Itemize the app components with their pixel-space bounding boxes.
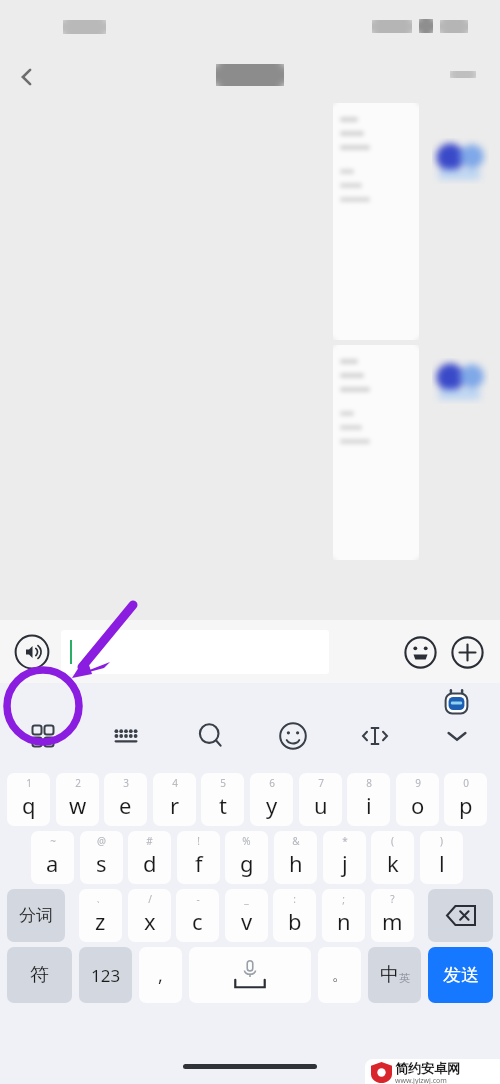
staticText: @ xyxy=(97,834,106,848)
button[interactable]: 符 xyxy=(7,947,72,1003)
button[interactable]: 1 xyxy=(7,773,50,826)
staticText: www.jylzwj.com xyxy=(395,1076,447,1084)
staticText: i xyxy=(366,790,372,820)
button[interactable]: More xyxy=(446,631,488,673)
staticText: e xyxy=(119,790,132,820)
staticText: 8 xyxy=(366,776,372,790)
staticText: - xyxy=(196,892,200,906)
staticText: n xyxy=(337,906,351,936)
button[interactable]: Stickers xyxy=(270,713,316,759)
staticText: * xyxy=(342,834,348,848)
staticText: : xyxy=(293,892,296,906)
staticText: 分词 xyxy=(19,905,53,926)
button[interactable]: # xyxy=(128,831,171,884)
staticText: y xyxy=(266,790,278,820)
button[interactable]: Emoji xyxy=(399,631,441,673)
button[interactable]: : xyxy=(273,889,316,942)
staticText: 英 xyxy=(399,971,410,985)
button[interactable]: Hide keyboard xyxy=(434,713,480,759)
staticText: z xyxy=(95,906,106,936)
staticText: 简约安卓网 xyxy=(395,1060,460,1076)
staticText: j xyxy=(342,848,348,878)
staticText: , xyxy=(158,963,163,988)
staticText: 6 xyxy=(269,776,275,790)
button[interactable]: 0 xyxy=(444,773,487,826)
button[interactable]: Space xyxy=(189,947,311,1003)
staticText: 发送 xyxy=(443,964,479,987)
staticText: ) xyxy=(440,834,443,848)
button[interactable]: _ xyxy=(225,889,268,942)
staticText: ! xyxy=(197,834,200,848)
staticText: ? xyxy=(390,892,395,906)
staticText: t xyxy=(219,790,227,820)
staticText: f xyxy=(195,848,203,878)
button[interactable]: 、 xyxy=(79,889,122,942)
staticText: ~ xyxy=(50,834,56,848)
staticText: 7 xyxy=(318,776,324,790)
button[interactable]: 6 xyxy=(250,773,293,826)
button[interactable]: ( xyxy=(371,831,414,884)
staticText: x xyxy=(144,906,156,936)
button[interactable]: % xyxy=(225,831,268,884)
button[interactable]: 8 xyxy=(347,773,390,826)
button[interactable]: - xyxy=(176,889,219,942)
button[interactable]: 2 xyxy=(56,773,99,826)
staticText: 4 xyxy=(172,776,178,790)
button[interactable]: 发送 xyxy=(428,947,493,1003)
button[interactable]: Keyboard layout xyxy=(103,713,149,759)
staticText: _ xyxy=(244,892,249,906)
button[interactable]: Text cursor xyxy=(352,713,398,759)
staticText: m xyxy=(382,906,403,936)
button[interactable]: 。 xyxy=(318,947,361,1003)
staticText: ; xyxy=(342,892,345,906)
staticText: d xyxy=(143,848,157,878)
staticText: 123 xyxy=(91,964,121,987)
button[interactable]: / xyxy=(128,889,171,942)
button[interactable]: AI assistant xyxy=(440,687,473,720)
button[interactable]: ; xyxy=(322,889,365,942)
staticText: % xyxy=(242,834,251,848)
staticText: g xyxy=(240,848,254,878)
staticText: l xyxy=(439,848,445,878)
button[interactable]: 5 xyxy=(201,773,244,826)
staticText: 符 xyxy=(30,963,49,987)
button[interactable]: & xyxy=(274,831,317,884)
staticText: 9 xyxy=(415,776,421,790)
button[interactable]: ? xyxy=(371,889,414,942)
staticText: c xyxy=(192,906,203,936)
button[interactable]: Search xyxy=(188,713,234,759)
button[interactable]: Backspace xyxy=(428,889,493,942)
button[interactable]: Voice input xyxy=(13,633,51,671)
button[interactable]: 分词 xyxy=(7,889,65,942)
button[interactable]: 中 xyxy=(368,947,421,1003)
button[interactable]: 4 xyxy=(153,773,196,826)
button[interactable] xyxy=(61,630,329,674)
staticText: u xyxy=(314,790,328,820)
button[interactable]: 7 xyxy=(299,773,342,826)
staticText: a xyxy=(46,848,59,878)
staticText: / xyxy=(148,892,152,906)
staticText: v xyxy=(241,906,253,936)
staticText: # xyxy=(146,834,153,848)
button[interactable]: * xyxy=(323,831,366,884)
staticText: 中 xyxy=(380,963,399,987)
staticText: b xyxy=(288,906,302,936)
button[interactable]: 3 xyxy=(104,773,147,826)
staticText: h xyxy=(289,848,303,878)
button[interactable]: 9 xyxy=(396,773,439,826)
staticText: r xyxy=(170,790,180,820)
button[interactable]: ! xyxy=(177,831,220,884)
staticText: 0 xyxy=(463,776,469,790)
staticText: 3 xyxy=(123,776,129,790)
button[interactable]: 123 xyxy=(79,947,132,1003)
button[interactable]: , xyxy=(139,947,182,1003)
button[interactable]: ~ xyxy=(31,831,74,884)
staticText: 2 xyxy=(75,776,81,790)
button[interactable]: @ xyxy=(80,831,123,884)
staticText: & xyxy=(292,834,300,848)
staticText: w xyxy=(69,790,87,820)
staticText: q xyxy=(22,790,36,820)
button[interactable]: Keyboard panels xyxy=(20,713,66,759)
staticText: 5 xyxy=(220,776,226,790)
button[interactable]: ) xyxy=(420,831,463,884)
